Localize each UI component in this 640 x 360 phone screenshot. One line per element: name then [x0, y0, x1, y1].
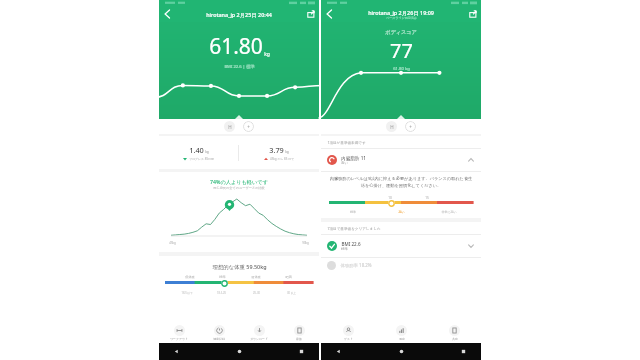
staticText: 理想的な体重 59.50kg [212, 263, 267, 270]
button[interactable]: Back [335, 348, 342, 355]
button[interactable]: Recents [298, 348, 305, 355]
staticText: 18.5 以下 [181, 291, 193, 295]
staticText: 1項目が基準値未満です [327, 140, 366, 145]
staticText: ダウンロード [250, 337, 268, 341]
staticText: 内臓脂肪 11 [341, 155, 366, 161]
button[interactable]: 家族 [279, 324, 319, 342]
staticText: hirotana_jp 2月25日 20:44 [206, 11, 272, 18]
button[interactable]: Share [303, 6, 319, 22]
staticText: 非常に高い [441, 210, 457, 214]
staticText: kg [264, 51, 270, 58]
staticText: BMI 22.6 [341, 241, 361, 247]
button[interactable]: BMI 22.6 [321, 235, 481, 257]
button[interactable]: 健康記録 [199, 324, 239, 342]
staticText: 標準 [341, 247, 348, 251]
button[interactable]: Home [236, 348, 243, 355]
staticText: 内臓脂肪のレベルは9以内に抑える必要があります。バランスの取れた食生活を心掛け、… [329, 176, 473, 188]
staticText: 体脂肪率 18.2% [340, 262, 372, 268]
button[interactable]: Share [465, 6, 481, 22]
staticText: BMI 22.6 | 標準 [224, 64, 255, 70]
staticText: 45kg から 85 日で [270, 157, 294, 161]
staticText: 同じ身長の全てのユーザーとの比較 [213, 186, 265, 190]
button[interactable]: History [224, 121, 235, 132]
staticText: 10 [388, 196, 392, 200]
staticText: 標準 [350, 210, 356, 214]
button[interactable]: Recents [460, 348, 467, 355]
staticText: 90kg [302, 241, 309, 245]
staticText: 家族 [296, 337, 302, 341]
staticText: 低体重 [185, 275, 195, 279]
staticText: kg [205, 150, 209, 154]
button[interactable]: Add [243, 121, 254, 132]
staticText: + [247, 124, 250, 130]
button[interactable]: 内臓脂肪 11 [321, 149, 481, 171]
staticText: 高い [341, 161, 348, 165]
staticText: 高い [398, 210, 405, 214]
button[interactable]: 共有 [428, 324, 481, 342]
staticText: 測定 [399, 337, 405, 341]
staticText: 標準 [219, 275, 226, 279]
button[interactable]: Add [405, 121, 416, 132]
staticText: プログレス 85日間 [189, 157, 214, 161]
button[interactable]: Home [398, 348, 405, 355]
staticText: H [228, 124, 232, 130]
staticText: 74%の人よりも軽いです [210, 178, 268, 185]
staticText: 45kg [169, 241, 176, 245]
staticText: H [390, 124, 394, 130]
staticText: 15 [425, 196, 429, 200]
staticText: 健康記録 [213, 337, 225, 341]
button[interactable]: 1.40 [159, 143, 238, 163]
button[interactable]: Back [321, 6, 337, 22]
staticText: ゲスト [344, 337, 353, 341]
button[interactable]: ゲスト [321, 324, 375, 342]
button[interactable]: Back [173, 348, 180, 355]
button[interactable]: Back [159, 6, 175, 22]
button[interactable]: ダウンロード [239, 324, 279, 342]
staticText: 77 [390, 37, 413, 64]
staticText: 3.79 [269, 145, 284, 155]
staticText: 7項目で基準値をクリアしました [327, 226, 381, 231]
staticText: 61.80 kg [393, 66, 410, 72]
button[interactable]: 3.79 [239, 143, 319, 163]
staticText: 共有 [452, 337, 458, 341]
staticText: kg [285, 150, 289, 154]
staticText: hirotana_jp 2月26日 19:09 [368, 9, 434, 16]
staticText: 1.40 [189, 145, 204, 155]
staticText: ワークアウト [170, 337, 188, 341]
staticText: 肥満 [285, 275, 292, 279]
staticText: 過体重 [251, 275, 261, 279]
staticText: ベースライン測定済み [386, 16, 417, 20]
staticText: 18.5-25 [217, 291, 226, 295]
staticText: 61.80 [209, 32, 263, 61]
button[interactable]: ワークアウト [159, 324, 199, 342]
staticText: + [409, 124, 412, 130]
staticText: 25-30 [253, 291, 260, 295]
staticText: 30 以上 [287, 291, 296, 295]
staticText: ボディスコア [385, 29, 417, 36]
button[interactable]: 体脂肪率 18.2% [321, 258, 481, 272]
button[interactable]: History [386, 121, 397, 132]
button[interactable]: 測定 [375, 324, 428, 342]
